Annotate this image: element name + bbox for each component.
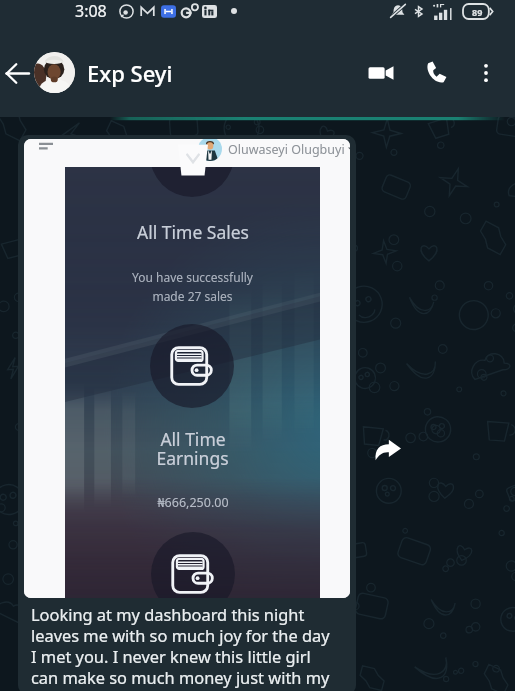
button[interactable]: Video call <box>361 53 401 93</box>
button[interactable] <box>34 52 75 93</box>
button[interactable]: More options <box>469 56 503 90</box>
staticText: All Time Sales <box>137 220 249 244</box>
staticText: All Time <box>160 427 226 451</box>
staticText: Looking at my dashboard this night leave… <box>31 603 330 689</box>
staticText: You have successfully <box>132 269 253 285</box>
staticText: 3:08 <box>75 0 107 22</box>
button[interactable]: Voice call <box>419 55 455 91</box>
staticText: Earnings <box>156 446 229 470</box>
staticText: Oluwaseyi Olugbuyi <box>228 141 345 158</box>
staticText: ₦666,250.00 <box>157 494 229 511</box>
staticText: made 27 sales <box>152 288 233 304</box>
button[interactable]: Forward <box>366 428 408 470</box>
staticText: 89 <box>472 6 483 18</box>
button[interactable]: Back <box>0 56 34 90</box>
button[interactable]: All Time Sales <box>18 135 356 691</box>
button[interactable]: Exp Seyi <box>87 58 173 88</box>
